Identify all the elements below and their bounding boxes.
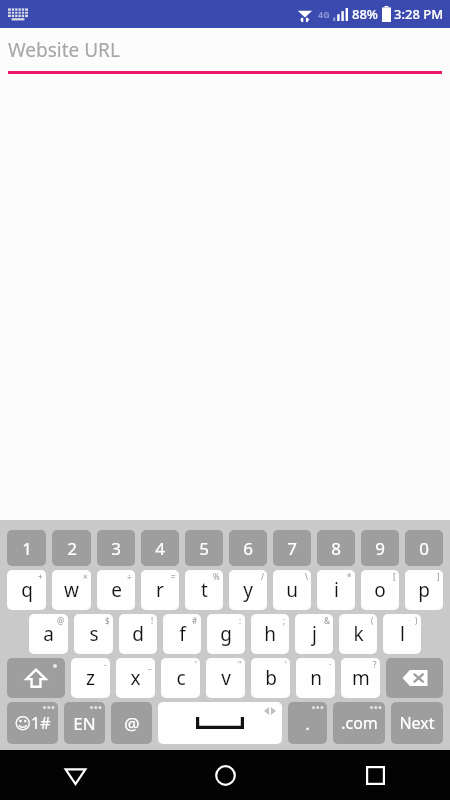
staticText: 1	[22, 537, 32, 560]
staticText: 9	[375, 537, 385, 560]
button[interactable]: 1	[7, 530, 46, 566]
staticText: x	[130, 665, 141, 691]
button[interactable]: a	[29, 614, 68, 654]
button[interactable]: 9	[361, 530, 399, 566]
staticText: 3:28 PM	[394, 5, 444, 23]
button[interactable]: Home	[150, 750, 300, 800]
button[interactable]: ☺1#	[7, 702, 58, 744]
staticText: y	[243, 577, 253, 603]
staticText: 7	[287, 537, 297, 560]
staticText: !	[151, 615, 154, 626]
button[interactable]: 3	[97, 530, 135, 566]
button[interactable]: t	[185, 570, 223, 610]
staticText: e	[111, 577, 122, 603]
staticText: 4G	[318, 8, 330, 20]
staticText: ×	[83, 571, 88, 582]
button[interactable]: EN	[64, 702, 105, 744]
button[interactable]: u	[273, 570, 311, 610]
button[interactable]: f	[163, 614, 201, 654]
staticText: q	[21, 577, 33, 603]
staticText: Next	[399, 712, 435, 734]
button[interactable]: 0	[405, 530, 443, 566]
button[interactable]: n	[296, 658, 335, 698]
staticText: v	[221, 665, 231, 691]
staticText: '	[195, 659, 197, 670]
staticText: 8	[331, 537, 341, 560]
button[interactable]: Next	[391, 702, 443, 744]
staticText: )	[415, 615, 418, 626]
button[interactable]: 4	[141, 530, 179, 566]
staticText: b	[265, 665, 277, 691]
staticText: i	[334, 577, 339, 603]
button[interactable]: q	[7, 570, 46, 610]
button[interactable]: 5	[185, 530, 223, 566]
button[interactable]: Recent apps	[300, 750, 450, 800]
staticText: f	[179, 621, 186, 647]
staticText: (	[371, 615, 374, 626]
staticText: -	[104, 659, 107, 670]
staticText: j	[312, 621, 317, 647]
staticText: @	[124, 712, 140, 735]
button[interactable]: s	[74, 614, 113, 654]
button[interactable]: 7	[273, 530, 311, 566]
button[interactable]: x	[116, 658, 155, 698]
button[interactable]: 6	[229, 530, 267, 566]
staticText: 3	[111, 537, 121, 560]
button[interactable]: 8	[317, 530, 355, 566]
button[interactable]: o	[361, 570, 399, 610]
button[interactable]: w	[52, 570, 91, 610]
button[interactable]: .com	[333, 702, 385, 744]
staticText: o	[374, 577, 386, 603]
staticText: g	[220, 621, 232, 647]
staticText: \	[305, 571, 308, 582]
button[interactable]: k	[339, 614, 377, 654]
staticText: %	[213, 571, 220, 582]
staticText: 4	[155, 537, 165, 560]
staticText: 88%	[352, 5, 378, 23]
button[interactable]: m	[341, 658, 380, 698]
staticText: a	[43, 621, 54, 647]
button[interactable]: Backspace	[386, 658, 443, 698]
staticText: EN	[73, 712, 96, 735]
button[interactable]: Website URL	[0, 28, 450, 74]
button[interactable]: Back	[0, 750, 150, 800]
button[interactable]: Space	[158, 702, 282, 744]
staticText: m	[352, 665, 370, 691]
staticText: "	[238, 659, 242, 670]
button[interactable]: d	[119, 614, 157, 654]
button[interactable]: r	[141, 570, 179, 610]
staticText: ·	[329, 659, 332, 670]
button[interactable]: y	[229, 570, 267, 610]
button[interactable]: l	[383, 614, 421, 654]
button[interactable]: b	[251, 658, 290, 698]
button[interactable]: Shift	[7, 658, 65, 698]
staticText: .com	[341, 712, 378, 734]
button[interactable]: .	[288, 702, 327, 744]
staticText: [	[393, 571, 396, 582]
button[interactable]: p	[405, 570, 443, 610]
staticText: _	[148, 659, 152, 670]
button[interactable]: z	[71, 658, 110, 698]
staticText: 0	[419, 537, 429, 560]
staticText: ;	[283, 615, 286, 626]
staticText: n	[310, 665, 322, 691]
staticText: u	[286, 577, 298, 603]
button[interactable]: c	[161, 658, 200, 698]
staticText: ☺1#	[14, 712, 51, 734]
staticText: ÷	[127, 571, 132, 582]
button[interactable]: j	[295, 614, 333, 654]
staticText: 6	[243, 537, 253, 560]
button[interactable]: v	[206, 658, 245, 698]
button[interactable]: i	[317, 570, 355, 610]
button[interactable]: e	[97, 570, 135, 610]
button[interactable]: 2	[52, 530, 91, 566]
button[interactable]: @	[111, 702, 152, 744]
staticText: &	[324, 615, 330, 626]
staticText: +	[38, 571, 43, 582]
staticText: t	[201, 577, 208, 603]
button[interactable]: g	[207, 614, 245, 654]
staticText: z	[86, 665, 95, 691]
button[interactable]: h	[251, 614, 289, 654]
staticText: :	[239, 615, 242, 626]
staticText: ]	[437, 571, 440, 582]
